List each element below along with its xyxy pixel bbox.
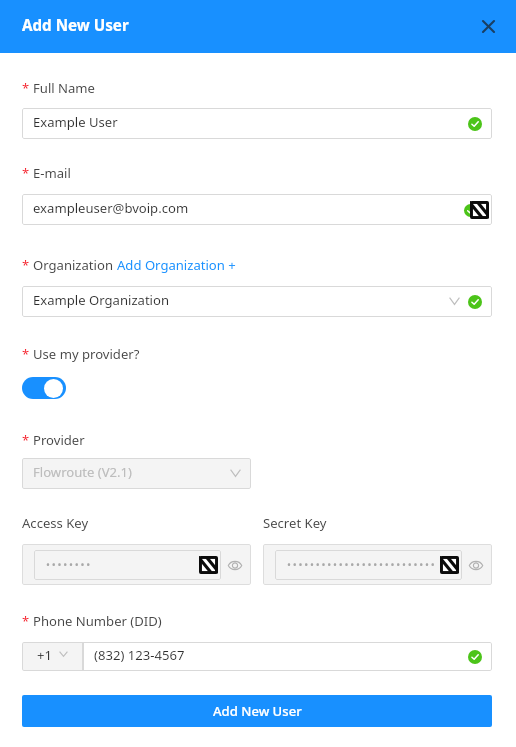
button[interactable]: +1 [22, 642, 83, 671]
staticText: •••••••••••••••••••••••••• [287, 558, 437, 572]
staticText: •••••••• [46, 558, 92, 572]
button[interactable]: Example Organization [22, 286, 492, 317]
button[interactable]: •••••••• [34, 550, 221, 580]
staticText: +1 [37, 646, 52, 664]
button[interactable]: Use my provider toggle [22, 377, 66, 399]
button[interactable]: Flowroute (V2.1) [22, 458, 251, 489]
staticText: Full Name [33, 79, 95, 97]
staticText: Phone Number (DID) [33, 612, 162, 630]
staticText: Use my provider? [33, 345, 140, 363]
staticText: Organization [33, 256, 113, 274]
staticText: Access Key [22, 514, 89, 532]
staticText: * [22, 431, 30, 449]
staticText: Secret Key [263, 514, 327, 532]
button[interactable]: Add New User [22, 695, 492, 727]
staticText: E-mail [33, 164, 71, 182]
staticText: Example Organization [33, 291, 170, 309]
button[interactable]: exampleuser@bvoip.com [22, 194, 492, 225]
staticText: Add Organization + [117, 256, 236, 274]
button[interactable]: Show key [226, 556, 244, 574]
staticText: exampleuser@bvoip.com [33, 199, 189, 217]
staticText: * [22, 164, 30, 182]
button[interactable]: (832) 123-4567 [83, 642, 492, 671]
button[interactable]: Show key [467, 556, 485, 574]
staticText: Add New User [22, 15, 129, 36]
staticText: * [22, 256, 30, 274]
staticText: Provider [33, 431, 85, 449]
staticText: * [22, 79, 30, 97]
staticText: * [22, 612, 30, 630]
staticText: Flowroute (V2.1) [33, 463, 133, 481]
staticText: Example User [33, 113, 118, 131]
button[interactable]: Close [473, 12, 501, 40]
staticText: Add New User [213, 702, 302, 720]
staticText: (832) 123-4567 [94, 646, 185, 664]
staticText: * [22, 345, 30, 363]
button[interactable]: Example User [22, 108, 492, 139]
button[interactable]: •••••••••••••••••••••••••• [275, 550, 462, 580]
